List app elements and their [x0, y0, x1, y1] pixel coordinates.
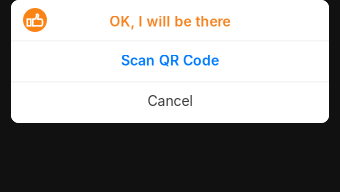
- button[interactable]: Cancel: [11, 82, 329, 123]
- staticText: OK, I will be there: [109, 13, 230, 30]
- button[interactable]: OK, I will be there: [11, 0, 329, 40]
- staticText: Scan QR Code: [121, 52, 219, 69]
- staticText: Cancel: [147, 92, 192, 109]
- button[interactable]: Scan QR Code: [11, 41, 329, 81]
